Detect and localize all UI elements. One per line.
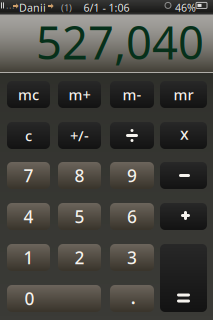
button[interactable]: 4 — [7, 203, 50, 230]
staticText: (1) — [61, 1, 72, 14]
button[interactable]: c — [7, 122, 50, 149]
staticText: 9 — [127, 164, 137, 187]
staticText: ... — [6, 0, 15, 11]
button[interactable]: Divide — [110, 122, 154, 149]
staticText: 6 — [127, 205, 137, 228]
staticText: mc — [18, 85, 39, 104]
button[interactable]: mc — [7, 81, 50, 108]
staticText: Danii — [19, 0, 46, 15]
staticText: 5 — [74, 205, 84, 228]
staticText: m- — [122, 85, 141, 104]
staticText: mr — [173, 85, 193, 104]
staticText: m+ — [68, 85, 90, 104]
staticText: 527,040 — [36, 12, 204, 72]
button[interactable]: Plus — [160, 203, 207, 230]
button[interactable]: 3 — [110, 244, 154, 271]
staticText: 3 — [127, 246, 137, 269]
button[interactable]: 5 — [58, 203, 101, 230]
button[interactable]: +/- — [58, 122, 101, 149]
button[interactable]: 1 — [7, 244, 50, 271]
staticText: x — [180, 123, 189, 144]
staticText: 4 — [23, 205, 33, 228]
button[interactable]: 6 — [110, 203, 154, 230]
button[interactable]: 7 — [7, 162, 50, 189]
button[interactable]: . — [110, 285, 154, 312]
button[interactable]: m- — [110, 81, 154, 108]
staticText: 6/1 - 1:06 — [83, 0, 129, 15]
staticText: +/- — [70, 126, 89, 145]
button[interactable]: mr — [160, 81, 207, 108]
button[interactable]: Equals — [160, 244, 207, 312]
staticText: 7 — [23, 164, 33, 187]
staticText: 46% — [175, 0, 196, 15]
staticText: 8 — [74, 164, 84, 187]
staticText: . — [130, 283, 135, 310]
button[interactable]: 9 — [110, 162, 154, 189]
button[interactable]: 2 — [58, 244, 101, 271]
staticText: 0 — [24, 287, 34, 310]
button[interactable]: m+ — [58, 81, 101, 108]
button[interactable]: x — [160, 122, 207, 149]
button[interactable]: Minus — [160, 162, 207, 189]
staticText: 1 — [23, 246, 33, 269]
button[interactable]: 8 — [58, 162, 101, 189]
button[interactable]: 0 — [7, 285, 101, 312]
staticText: c — [25, 126, 32, 145]
staticText: 2 — [74, 246, 84, 269]
